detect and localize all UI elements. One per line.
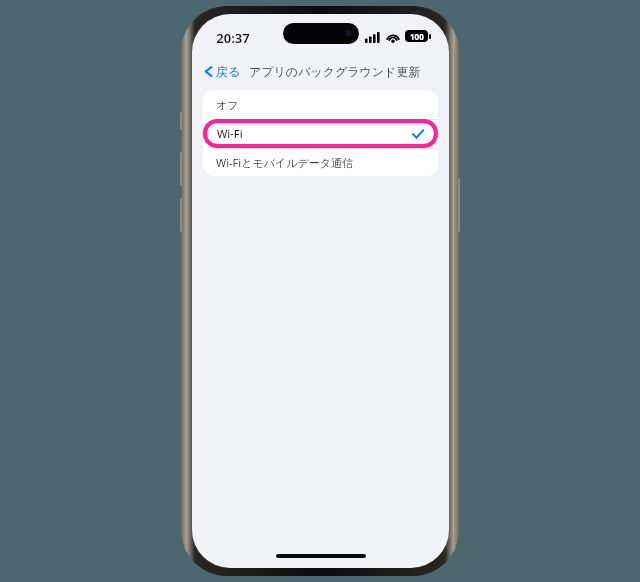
staticText: Wi-Fiとモバイルデータ通信 bbox=[216, 155, 353, 170]
button[interactable]: Wi-Fi bbox=[203, 120, 438, 148]
staticText: アプリのバックグラウンド更新 bbox=[249, 64, 421, 79]
staticText: 100 bbox=[410, 31, 424, 42]
button[interactable]: 戻る bbox=[200, 58, 245, 84]
staticText: Wi-Fi bbox=[216, 127, 242, 142]
staticText: 戻る bbox=[216, 64, 241, 79]
button[interactable]: オフ bbox=[203, 90, 438, 119]
other: Home indicator bbox=[276, 554, 366, 558]
staticText: オフ bbox=[216, 98, 239, 112]
staticText: 20:37 bbox=[216, 29, 250, 47]
button[interactable]: Wi-Fiとモバイルデータ通信 bbox=[203, 149, 438, 176]
staticText: Wi-Fi bbox=[217, 126, 243, 141]
